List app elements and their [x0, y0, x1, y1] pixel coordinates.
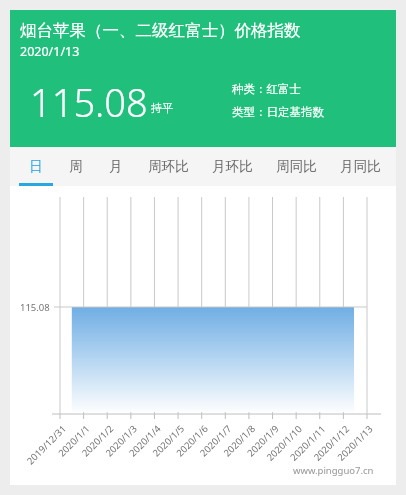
button[interactable]: 日	[16, 147, 56, 186]
button[interactable]: 周环比	[136, 147, 200, 186]
button[interactable]: 月	[96, 147, 136, 186]
staticText: 周	[69, 158, 83, 175]
button[interactable]: 周	[56, 147, 96, 186]
button[interactable]: 周同比	[264, 147, 328, 186]
staticText: 115.08	[30, 76, 148, 128]
staticText: 种类：红富士	[232, 82, 301, 96]
staticText: 周同比	[276, 158, 317, 175]
staticText: 烟台苹果（一、二级红富士）价格指数	[20, 20, 301, 41]
staticText: 持平	[151, 101, 173, 115]
staticText: 月	[109, 158, 123, 175]
staticText: 类型：日定基指数	[232, 105, 324, 119]
staticText: 月环比	[212, 158, 253, 175]
button[interactable]: 月环比	[200, 147, 264, 186]
staticText: 2020/1/13	[20, 43, 80, 60]
staticText: 月同比	[340, 158, 381, 175]
staticText: 周环比	[148, 158, 189, 175]
staticText: 日	[29, 158, 43, 175]
button[interactable]: 月同比	[328, 147, 392, 186]
